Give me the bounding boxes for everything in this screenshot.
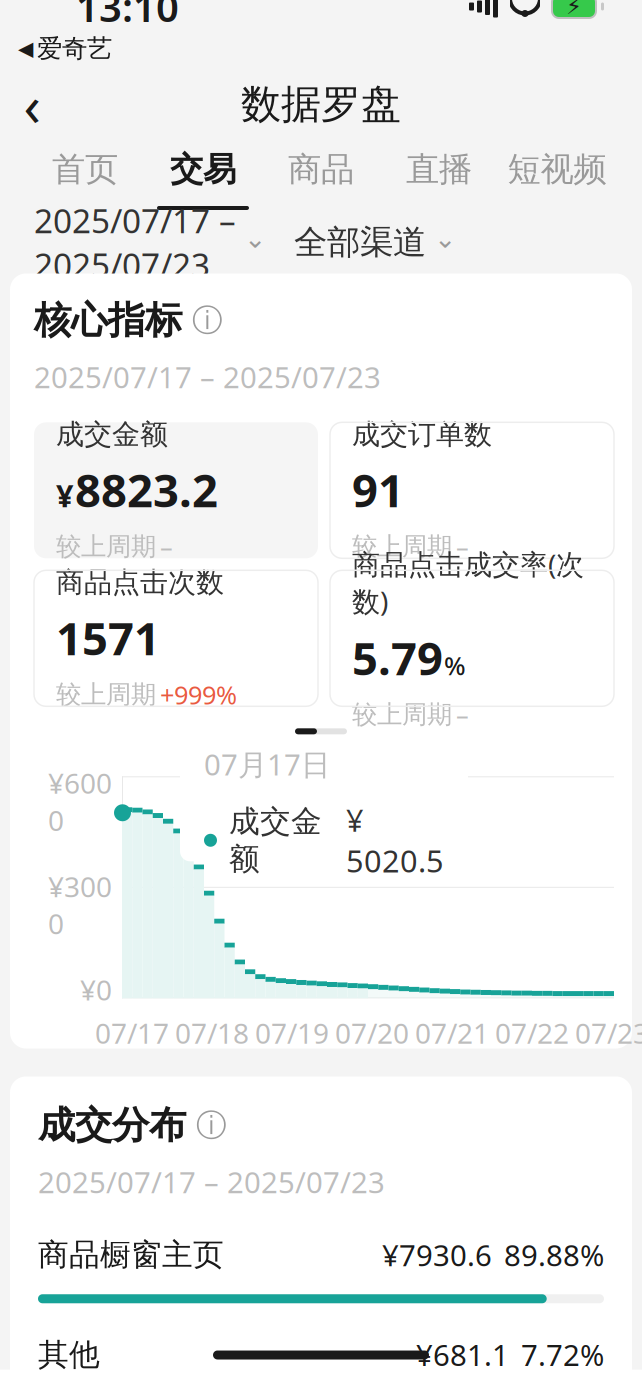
button[interactable]: 短视频 <box>498 147 616 211</box>
staticText: – <box>456 530 469 563</box>
staticText: ⓘ <box>192 302 223 339</box>
staticText: 07/19 <box>255 1014 329 1051</box>
staticText: 07/18 <box>175 1014 249 1051</box>
staticText: 07月17日 <box>204 745 330 784</box>
staticText: ¥3000 <box>48 868 112 942</box>
staticText: 2025/07/17 – 2025/07/23 <box>34 198 236 287</box>
staticText: 07/20 <box>335 1014 409 1051</box>
button[interactable]: 成交分布说明 <box>196 1107 227 1144</box>
staticText: – <box>160 530 173 563</box>
staticText: ⌄ <box>244 223 266 254</box>
staticText: 商品 <box>288 149 354 190</box>
staticText: ◀ <box>18 37 33 60</box>
button[interactable]: 核心指标说明 <box>192 302 223 339</box>
staticText: 商品点击次数 <box>56 565 224 600</box>
staticText: ¥7930.6 <box>382 1235 492 1274</box>
staticText: 数据罗盘 <box>241 80 401 129</box>
staticText: 07/22 <box>495 1014 569 1051</box>
staticText: 全部渠道 <box>294 222 426 263</box>
staticText: ⓘ <box>196 1107 227 1144</box>
staticText: +999% <box>160 678 237 711</box>
staticText: 首页 <box>52 149 118 190</box>
staticText: 较上周期 <box>352 531 452 562</box>
staticText: 商品橱窗主页 <box>38 1236 224 1274</box>
staticText: 7.72% <box>521 1335 604 1374</box>
staticText: 成交订单数 <box>352 417 492 452</box>
staticText: 8823.2 <box>75 460 218 520</box>
staticText: ⌄ <box>434 223 456 254</box>
staticText: 直播 <box>406 149 472 190</box>
staticText: 5.79 <box>352 628 443 688</box>
button[interactable]: 直播 <box>380 147 498 211</box>
staticText: % <box>444 649 466 682</box>
staticText: 商品点击成交率(次数) <box>352 545 584 620</box>
button[interactable]: 交易 <box>144 147 262 211</box>
staticText: ¥ 5020.5 <box>346 800 444 881</box>
button[interactable]: 首页 <box>26 147 144 211</box>
staticText: 成交分布 <box>38 1102 186 1148</box>
staticText: 成交金额 <box>56 417 168 452</box>
staticText: 91 <box>352 460 404 520</box>
staticText: 07/21 <box>415 1014 489 1051</box>
staticText: – <box>456 698 469 731</box>
staticText: ¥ <box>56 475 74 516</box>
staticText: 核心指标 <box>34 297 182 343</box>
staticText: 爱奇艺 <box>37 33 112 64</box>
staticText: ‹ <box>23 67 40 142</box>
staticText: 成交金额 <box>229 803 322 878</box>
staticText: ¥681.1 <box>416 1335 509 1374</box>
staticText: 其他 <box>38 1336 100 1374</box>
button[interactable]: 商品 <box>262 147 380 211</box>
button[interactable]: Back <box>0 76 64 132</box>
staticText: 1571 <box>56 608 160 668</box>
staticText: 2025/07/17 – 2025/07/23 <box>38 1162 385 1201</box>
staticText: ⚡︎ <box>566 0 582 19</box>
staticText: 交易 <box>170 149 236 190</box>
staticText: 07/17 <box>95 1014 169 1051</box>
staticText: 较上周期 <box>56 679 156 710</box>
staticText: 07/23 <box>575 1014 642 1051</box>
button[interactable]: 全部渠道 <box>266 212 456 273</box>
staticText: 较上周期 <box>56 531 156 562</box>
staticText: 13:10 <box>76 0 179 33</box>
button[interactable]: 2025/07/17 – 2025/07/23 <box>34 188 266 297</box>
staticText: 较上周期 <box>352 699 452 730</box>
staticText: 短视频 <box>507 149 606 190</box>
staticText: 89.88% <box>504 1235 604 1274</box>
staticText: ¥6000 <box>48 764 112 839</box>
staticText: ¥0 <box>80 971 112 1008</box>
staticText: 2025/07/17 – 2025/07/23 <box>34 357 381 396</box>
